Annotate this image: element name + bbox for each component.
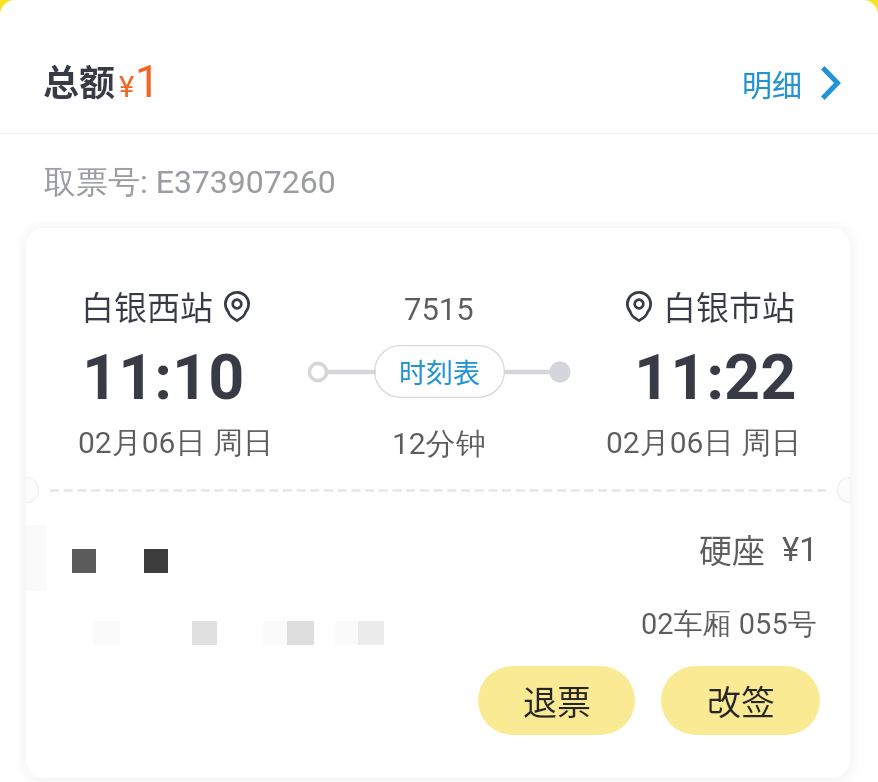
other: View details [822, 67, 840, 99]
staticText: 02月06日 周日 [606, 424, 801, 462]
staticText: 11:10 [82, 341, 245, 415]
button[interactable]: 时刻表 [374, 345, 505, 398]
staticText: 时刻表 [399, 352, 480, 391]
staticText: 7515 [404, 291, 474, 327]
staticText: 总额 [43, 54, 116, 106]
button[interactable]: 明细 View fare details [742, 61, 840, 104]
staticText: 硬座 [699, 525, 765, 573]
staticText: 白银市站 [663, 282, 795, 330]
button[interactable]: Passenger ticket details [26, 516, 850, 646]
staticText: 取票号: E373907260 [44, 162, 336, 202]
staticText: 白银西站 [81, 282, 213, 330]
button[interactable]: 总额 [43, 54, 162, 106]
staticText: 11:22 [634, 341, 797, 415]
staticText: 02月06日 周日 [78, 424, 273, 462]
button[interactable]: 退票 [478, 666, 635, 735]
button[interactable]: 改签 [661, 666, 820, 735]
staticText: 12分钟 [392, 425, 486, 463]
staticText: ¥1 [782, 530, 818, 569]
staticText: 明细 [742, 61, 802, 104]
staticText: 1 [135, 56, 160, 108]
staticText: 02车厢 055号 [641, 606, 817, 643]
staticText: 退票 [523, 676, 591, 725]
staticText: 改签 [707, 676, 775, 725]
staticText: ¥ [119, 70, 135, 104]
